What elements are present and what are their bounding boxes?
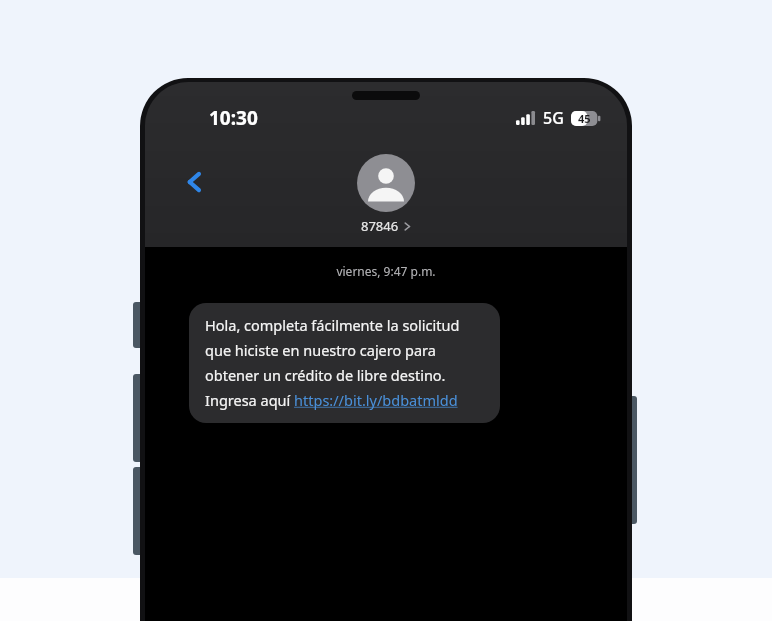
staticText: viernes, 9:47 p.m. bbox=[145, 263, 627, 279]
button[interactable]: Back bbox=[175, 162, 215, 202]
staticText: Hola, completa fácilmente la solicitud q… bbox=[205, 315, 486, 410]
button[interactable]: Hola, completa fácilmente la solicitud q… bbox=[189, 303, 500, 423]
button[interactable]: 87846 bbox=[357, 154, 415, 235]
staticText: 45 bbox=[578, 111, 591, 126]
staticText: 87846 bbox=[361, 217, 399, 235]
staticText: 10:30 bbox=[209, 105, 258, 131]
staticText: 5G bbox=[543, 107, 564, 129]
